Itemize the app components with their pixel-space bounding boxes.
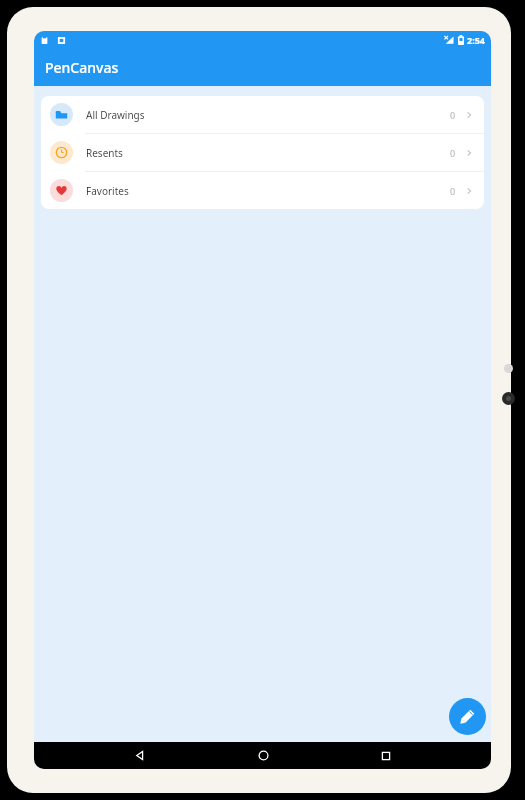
button[interactable]: Back	[121, 742, 157, 769]
staticText: 0	[450, 109, 456, 121]
staticText: 0	[450, 147, 456, 159]
button[interactable]: Resents	[41, 134, 484, 172]
button[interactable]: New drawing	[449, 698, 486, 735]
button[interactable]: Favorites	[41, 172, 484, 209]
staticText: Resents	[86, 146, 450, 160]
staticText: PenCanvas	[45, 58, 119, 77]
staticText: 2:54	[467, 34, 485, 46]
button[interactable]: All Drawings	[41, 96, 484, 134]
staticText: 0	[450, 185, 456, 197]
staticText: Favorites	[86, 184, 450, 198]
button[interactable]: Home	[245, 742, 281, 769]
button[interactable]: Recent apps	[368, 742, 404, 769]
staticText: All Drawings	[86, 108, 450, 122]
